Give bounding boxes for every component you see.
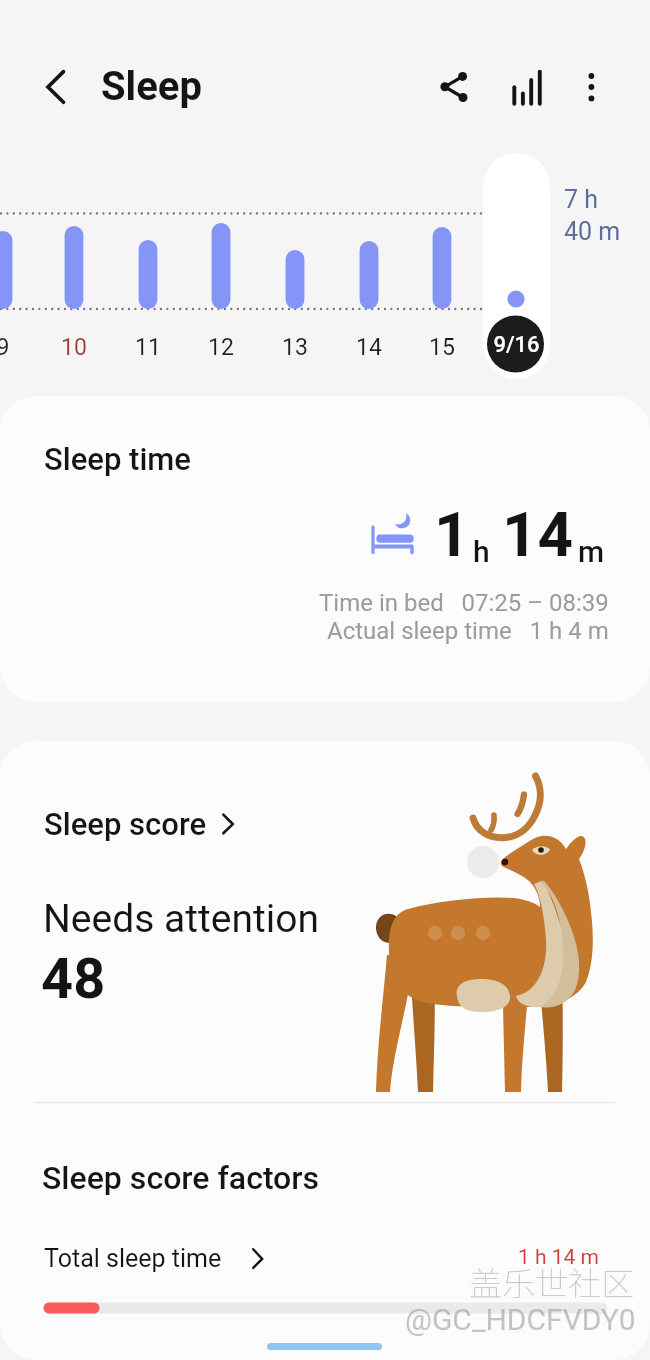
staticText: 15 — [412, 334, 472, 361]
staticText: Time in bed 07:25 – 08:39 — [319, 589, 609, 617]
staticText: 9/16 — [483, 332, 550, 358]
staticText: 9 — [0, 334, 33, 361]
staticText: 7 h 40 m — [564, 185, 621, 246]
staticText: 11 — [118, 334, 178, 361]
staticText: 14 — [339, 334, 399, 361]
button[interactable]: Total sleep time — [44, 1244, 235, 1273]
button[interactable] — [483, 153, 550, 379]
staticText: 13 — [265, 334, 325, 361]
button[interactable]: Back — [26, 63, 74, 111]
staticText: Total sleep time — [44, 1244, 222, 1273]
staticText: 48 — [41, 946, 106, 1012]
staticText: 盖乐世社区 — [469, 1258, 634, 1306]
staticText: 10 — [44, 334, 104, 361]
staticText: Sleep score — [44, 806, 207, 842]
staticText: Sleep — [101, 63, 202, 110]
staticText: 1 h 14 m — [518, 1245, 600, 1270]
button[interactable]: Trends — [503, 63, 551, 111]
staticText: 14 — [502, 498, 574, 571]
staticText: Sleep score factors — [42, 1159, 320, 1197]
button[interactable]: Sleep score — [44, 806, 221, 842]
staticText: m — [578, 534, 605, 569]
staticText: Sleep time — [44, 441, 191, 477]
staticText: Needs attention — [43, 896, 319, 942]
staticText: Actual sleep time 1 h 4 m — [327, 617, 609, 645]
staticText: h — [473, 534, 490, 569]
staticText: 12 — [191, 334, 251, 361]
button[interactable]: Share — [430, 63, 478, 111]
staticText: @GC_HDCFVDY0 — [405, 1302, 636, 1337]
staticText: 1 — [434, 498, 470, 571]
button[interactable]: More options — [568, 63, 616, 111]
